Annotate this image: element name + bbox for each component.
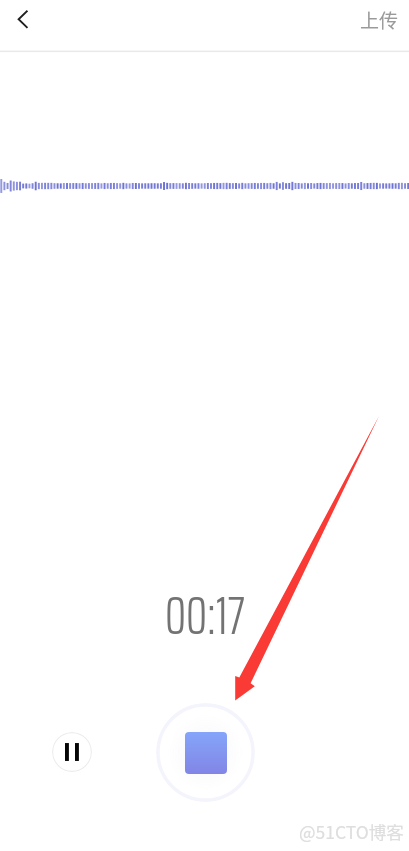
button[interactable]: Back bbox=[0, 0, 44, 44]
button[interactable]: Stop recording bbox=[156, 703, 255, 802]
button[interactable]: 上传 bbox=[353, 0, 392, 44]
staticText: 上传 bbox=[360, 6, 399, 34]
button[interactable]: Pause bbox=[52, 732, 92, 772]
staticText: 00:17 bbox=[165, 574, 245, 657]
staticText: @51CTO博客 bbox=[299, 819, 404, 844]
